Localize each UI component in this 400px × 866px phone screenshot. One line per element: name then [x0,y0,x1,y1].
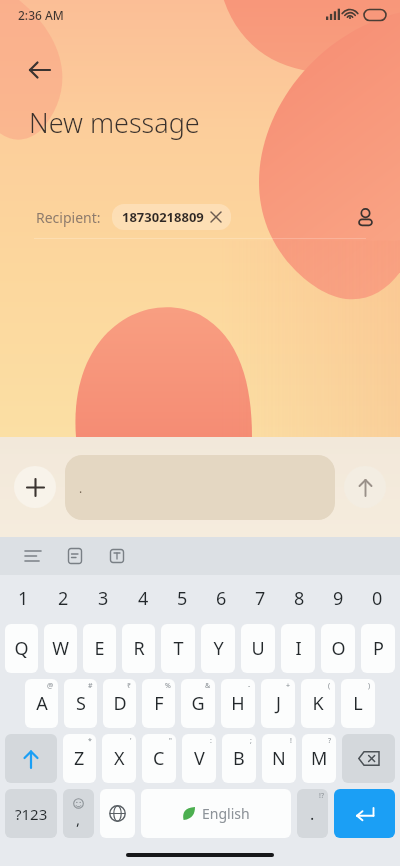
button[interactable]: Shift [5,734,57,783]
staticText: * [88,736,92,746]
button[interactable]: Y [201,624,235,673]
button[interactable]: V [182,734,216,783]
staticText: 7 [255,586,266,611]
staticText: Q [14,636,29,661]
staticText: 0 [372,586,383,611]
button[interactable]: 0 [358,575,397,621]
button[interactable]: 6 [202,575,241,621]
button[interactable]: 8 [280,575,319,621]
staticText: J [276,691,281,716]
staticText: O [331,636,346,661]
button[interactable]: Emoji and comma [63,789,94,838]
staticText: ' [130,736,132,746]
staticText: T [173,636,184,661]
button[interactable]: 2 [43,575,83,621]
button[interactable]: S [64,679,97,728]
staticText: H [231,691,245,716]
staticText: S [76,691,86,716]
button[interactable]: Q [5,624,38,673]
button[interactable]: Text tools [102,541,132,571]
staticText: 4 [138,586,149,611]
button[interactable]: O [321,624,355,673]
button[interactable]: Z [63,734,96,783]
staticText: 2:36 AM [18,7,64,23]
button[interactable]: P [361,624,395,673]
button[interactable]: 9 [319,575,358,621]
staticText: D [113,691,127,716]
staticText: . [310,803,315,825]
staticText: New message [29,104,200,141]
button[interactable]: U [241,624,275,673]
staticText: 18730218809 [122,208,204,226]
button[interactable]: Back [20,50,60,90]
staticText: I [295,636,302,661]
staticText: 5 [177,586,188,611]
button[interactable]: 1 [3,575,43,621]
button[interactable]: N [262,734,296,783]
button[interactable]: W [44,624,77,673]
button[interactable]: Choose contact [346,198,384,236]
staticText: English [202,804,250,823]
button[interactable]: K [301,679,335,728]
staticText: . [79,480,83,496]
button[interactable]: Backspace [342,734,395,783]
button[interactable]: J [261,679,295,728]
staticText: !? [319,791,324,801]
button[interactable]: 18730218809 [112,204,231,230]
staticText: C [153,746,165,771]
staticText: & [205,681,211,691]
button[interactable]: Add attachment [14,466,56,508]
staticText: M [311,746,328,771]
button[interactable]: G [181,679,215,728]
staticText: R [133,636,145,661]
button[interactable]: A [25,679,58,728]
button[interactable]: M [302,734,336,783]
button[interactable]: F [142,679,175,728]
staticText: N [272,746,286,771]
staticText: Z [74,746,85,771]
button[interactable]: E [83,624,116,673]
staticText: ₹ [127,681,132,691]
button[interactable]: 7 [241,575,280,621]
button[interactable]: Send [344,466,386,508]
staticText: ? [328,736,332,746]
button[interactable]: English [141,789,291,838]
button[interactable]: 5 [163,575,202,621]
staticText: W [52,636,69,661]
staticText: 8 [294,586,305,611]
button[interactable]: Menu [18,541,48,571]
staticText: Recipient: [36,208,101,227]
button[interactable]: R [122,624,155,673]
button[interactable]: 4 [123,575,163,621]
staticText: + [286,681,291,691]
staticText: B [233,746,245,771]
staticText: L [353,691,363,716]
staticText: ( [328,681,331,691]
button[interactable]: C [142,734,176,783]
button[interactable]: ?123 [5,789,57,838]
staticText: G [191,691,205,716]
button[interactable]: X [102,734,136,783]
button[interactable]: H [221,679,255,728]
staticText: # [88,681,93,691]
staticText: ; [250,736,252,746]
button[interactable]: . [297,789,328,838]
button[interactable]: 3 [83,575,123,621]
button[interactable]: Enter [334,789,395,838]
staticText: F [154,691,164,716]
staticText: " [169,736,172,746]
staticText: V [194,746,205,771]
button[interactable]: Change language [100,789,135,838]
button[interactable]: L [341,679,375,728]
button[interactable]: Clipboard [60,541,90,571]
staticText: X [114,746,125,771]
button[interactable]: B [222,734,256,783]
staticText: K [312,691,324,716]
button[interactable]: . [65,455,335,520]
staticText: % [165,681,171,691]
button[interactable]: I [281,624,315,673]
button[interactable]: T [161,624,195,673]
staticText: : [210,736,212,746]
staticText: 2 [58,586,69,611]
button[interactable]: D [103,679,136,728]
